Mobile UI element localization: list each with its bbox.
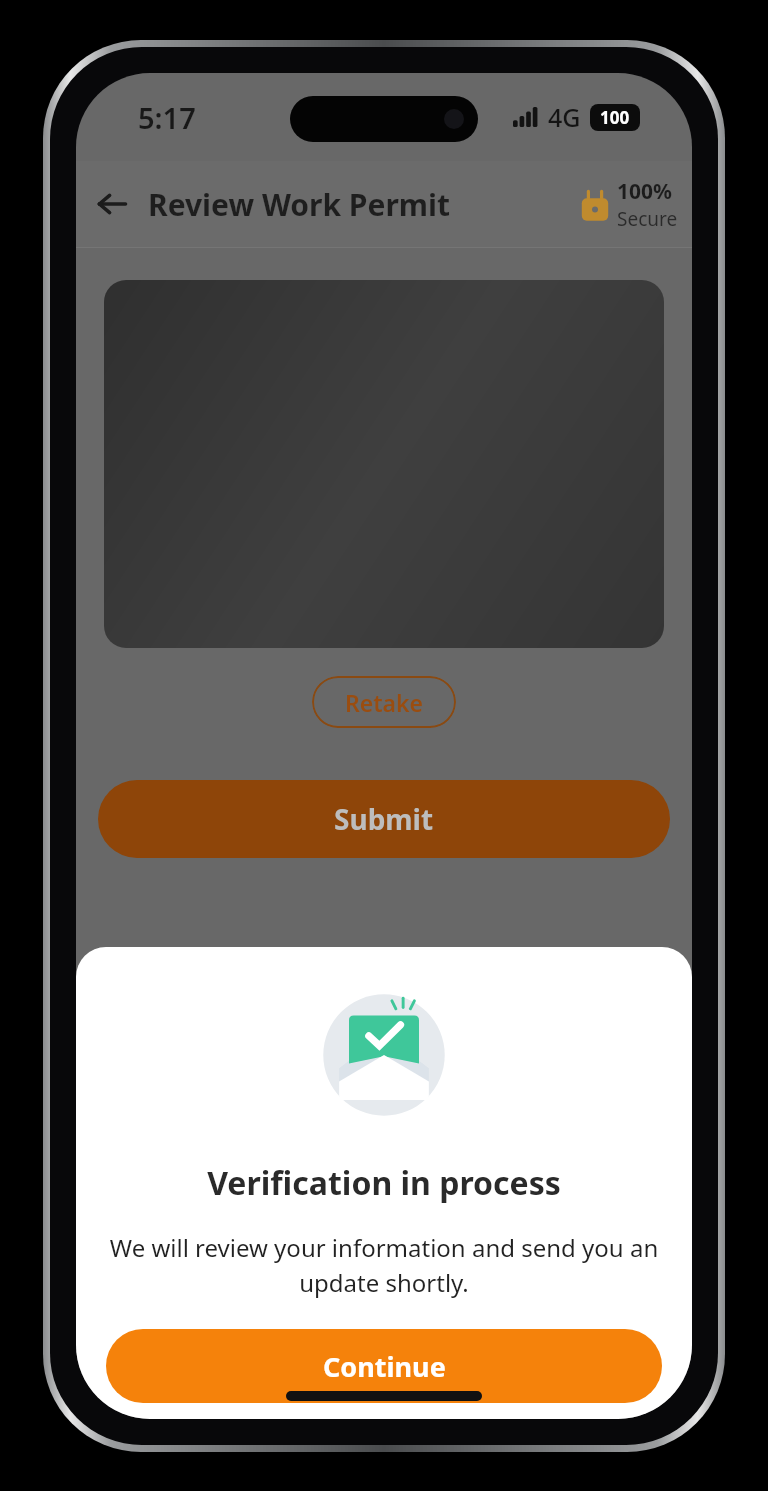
staticText: Retake xyxy=(345,687,424,718)
staticText: Continue xyxy=(323,1348,446,1385)
staticText: Secure xyxy=(617,206,678,232)
staticText: We will review your information and send… xyxy=(106,1231,662,1299)
staticText: 5:17 xyxy=(138,98,196,137)
staticText: 100% xyxy=(617,177,672,206)
button[interactable]: Continue xyxy=(106,1329,662,1403)
button[interactable]: 100% xyxy=(580,177,678,232)
staticText: Review Work Permit xyxy=(148,184,451,225)
button[interactable]: Retake xyxy=(312,676,456,728)
staticText: Verification in process xyxy=(207,1161,561,1205)
staticText: 100 xyxy=(600,106,630,129)
button[interactable]: Back xyxy=(84,176,140,232)
button[interactable]: Submit xyxy=(98,780,670,858)
staticText: Submit xyxy=(334,800,434,838)
staticText: 4G xyxy=(548,100,581,134)
